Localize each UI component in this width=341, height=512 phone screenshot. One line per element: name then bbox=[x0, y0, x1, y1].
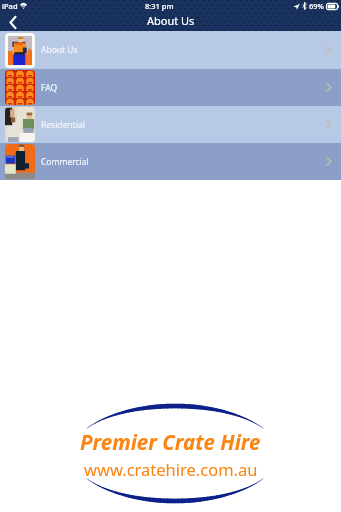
staticText: About Us bbox=[147, 13, 195, 28]
staticText: Residential bbox=[41, 119, 85, 131]
button[interactable]: Back bbox=[3, 12, 23, 32]
staticText: 8:31 pm bbox=[145, 1, 174, 11]
staticText: About Us bbox=[41, 44, 78, 56]
button[interactable]: Commercial bbox=[0, 143, 341, 180]
staticText: iPad bbox=[2, 1, 18, 11]
button[interactable]: About Us bbox=[0, 31, 341, 69]
button[interactable]: Residential bbox=[0, 106, 341, 143]
staticText: Premier Crate Hire bbox=[80, 428, 261, 456]
staticText: 69% bbox=[309, 1, 324, 11]
button[interactable]: FAQ bbox=[0, 69, 341, 106]
staticText: Commercial bbox=[41, 156, 89, 168]
staticText: www.cratehire.com.au bbox=[84, 458, 258, 480]
staticText: FAQ bbox=[41, 82, 58, 94]
